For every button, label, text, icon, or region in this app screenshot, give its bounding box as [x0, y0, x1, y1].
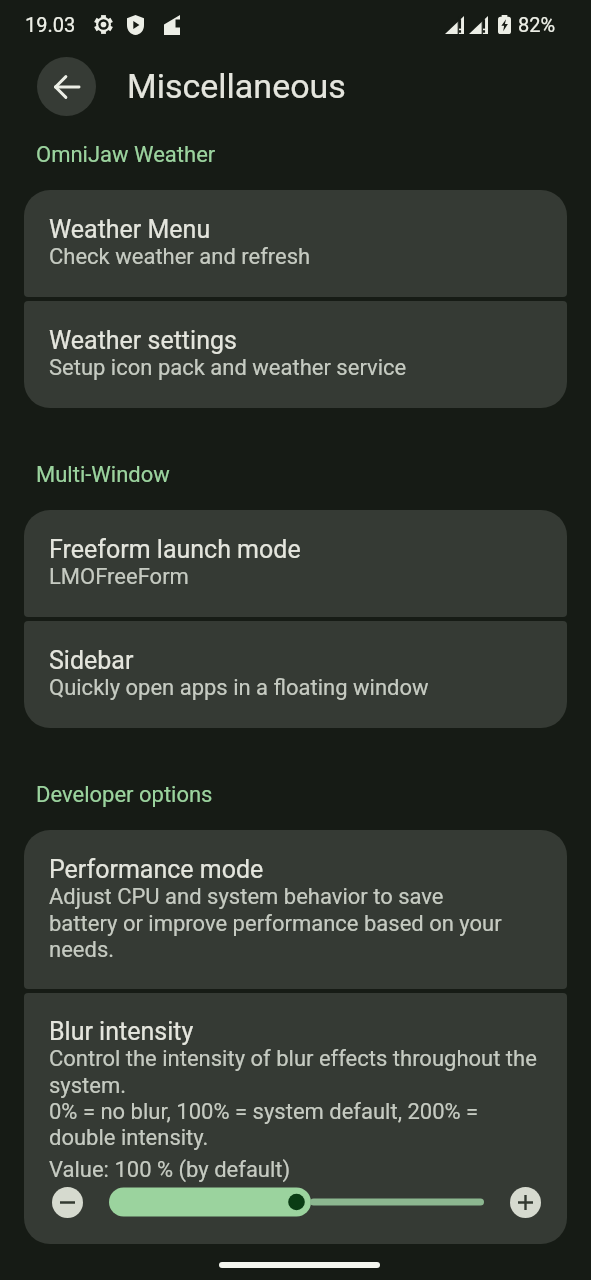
staticText: 82%: [518, 13, 556, 36]
staticText: OmniJaw Weather: [36, 142, 216, 168]
staticText: Blur intensity: [49, 1017, 194, 1046]
button[interactable]: Increase: [510, 1187, 541, 1218]
button[interactable]: Sidebar: [24, 621, 567, 728]
button[interactable]: Weather Menu: [24, 190, 567, 297]
staticText: Check weather and refresh: [49, 244, 311, 270]
staticText: Freeform launch mode: [49, 535, 301, 564]
staticText: Miscellaneous: [127, 66, 346, 106]
button[interactable]: Blur intensity slider: [109, 1186, 484, 1218]
staticText: Setup icon pack and weather service: [49, 355, 407, 381]
staticText: Adjust CPU and system behavior to save b…: [49, 884, 502, 962]
button[interactable]: Back: [37, 57, 96, 116]
staticText: 19.03: [25, 13, 76, 36]
button[interactable]: Freeform launch mode: [24, 510, 567, 617]
staticText: Weather Menu: [49, 215, 211, 244]
staticText: Quickly open apps in a floating window: [49, 675, 429, 701]
staticText: Value: 100 % (by default): [49, 1157, 291, 1183]
button[interactable]: Performance mode: [24, 830, 567, 989]
button[interactable]: Weather settings: [24, 301, 567, 408]
staticText: Developer options: [36, 782, 213, 808]
staticText: Sidebar: [49, 646, 134, 675]
button[interactable]: Decrease: [52, 1187, 83, 1218]
button[interactable]: Blur intensity: [24, 993, 567, 1244]
staticText: Performance mode: [49, 855, 264, 884]
staticText: Weather settings: [49, 326, 237, 355]
staticText: Control the intensity of blur effects th…: [49, 1046, 537, 1150]
staticText: LMOFreeForm: [49, 564, 189, 590]
staticText: Multi-Window: [36, 462, 170, 488]
